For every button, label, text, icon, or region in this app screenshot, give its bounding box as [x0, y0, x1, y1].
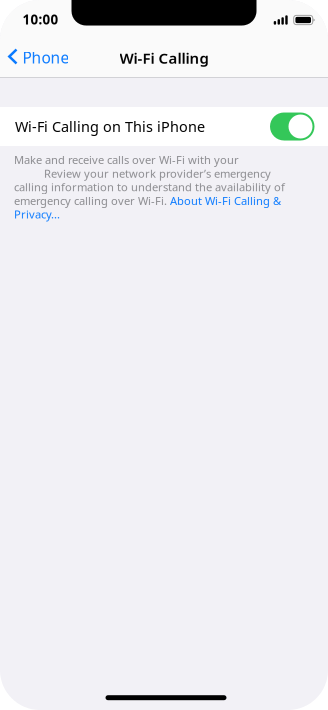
staticText: Privacy...	[14, 207, 60, 222]
button[interactable]: About Wi-Fi Calling &	[170, 193, 281, 208]
staticText: Wi-Fi Calling on This iPhone	[15, 117, 205, 136]
button[interactable]: Wi-Fi Calling on This iPhone	[0, 107, 328, 146]
staticText: Phone	[22, 47, 69, 68]
staticText: emergency calling over Wi-Fi.	[14, 193, 170, 208]
staticText: 10:00	[22, 10, 58, 28]
staticText: Wi-Fi Calling	[119, 48, 208, 68]
staticText: Review your network provider’s emergency	[14, 166, 271, 181]
staticText: About Wi-Fi Calling &	[170, 193, 281, 208]
staticText: Make and receive calls over Wi-Fi with y…	[14, 152, 239, 167]
staticText: calling information to understand the av…	[14, 179, 285, 195]
button[interactable]: Privacy...	[14, 207, 60, 222]
button[interactable]: Phone	[0, 37, 79, 75]
